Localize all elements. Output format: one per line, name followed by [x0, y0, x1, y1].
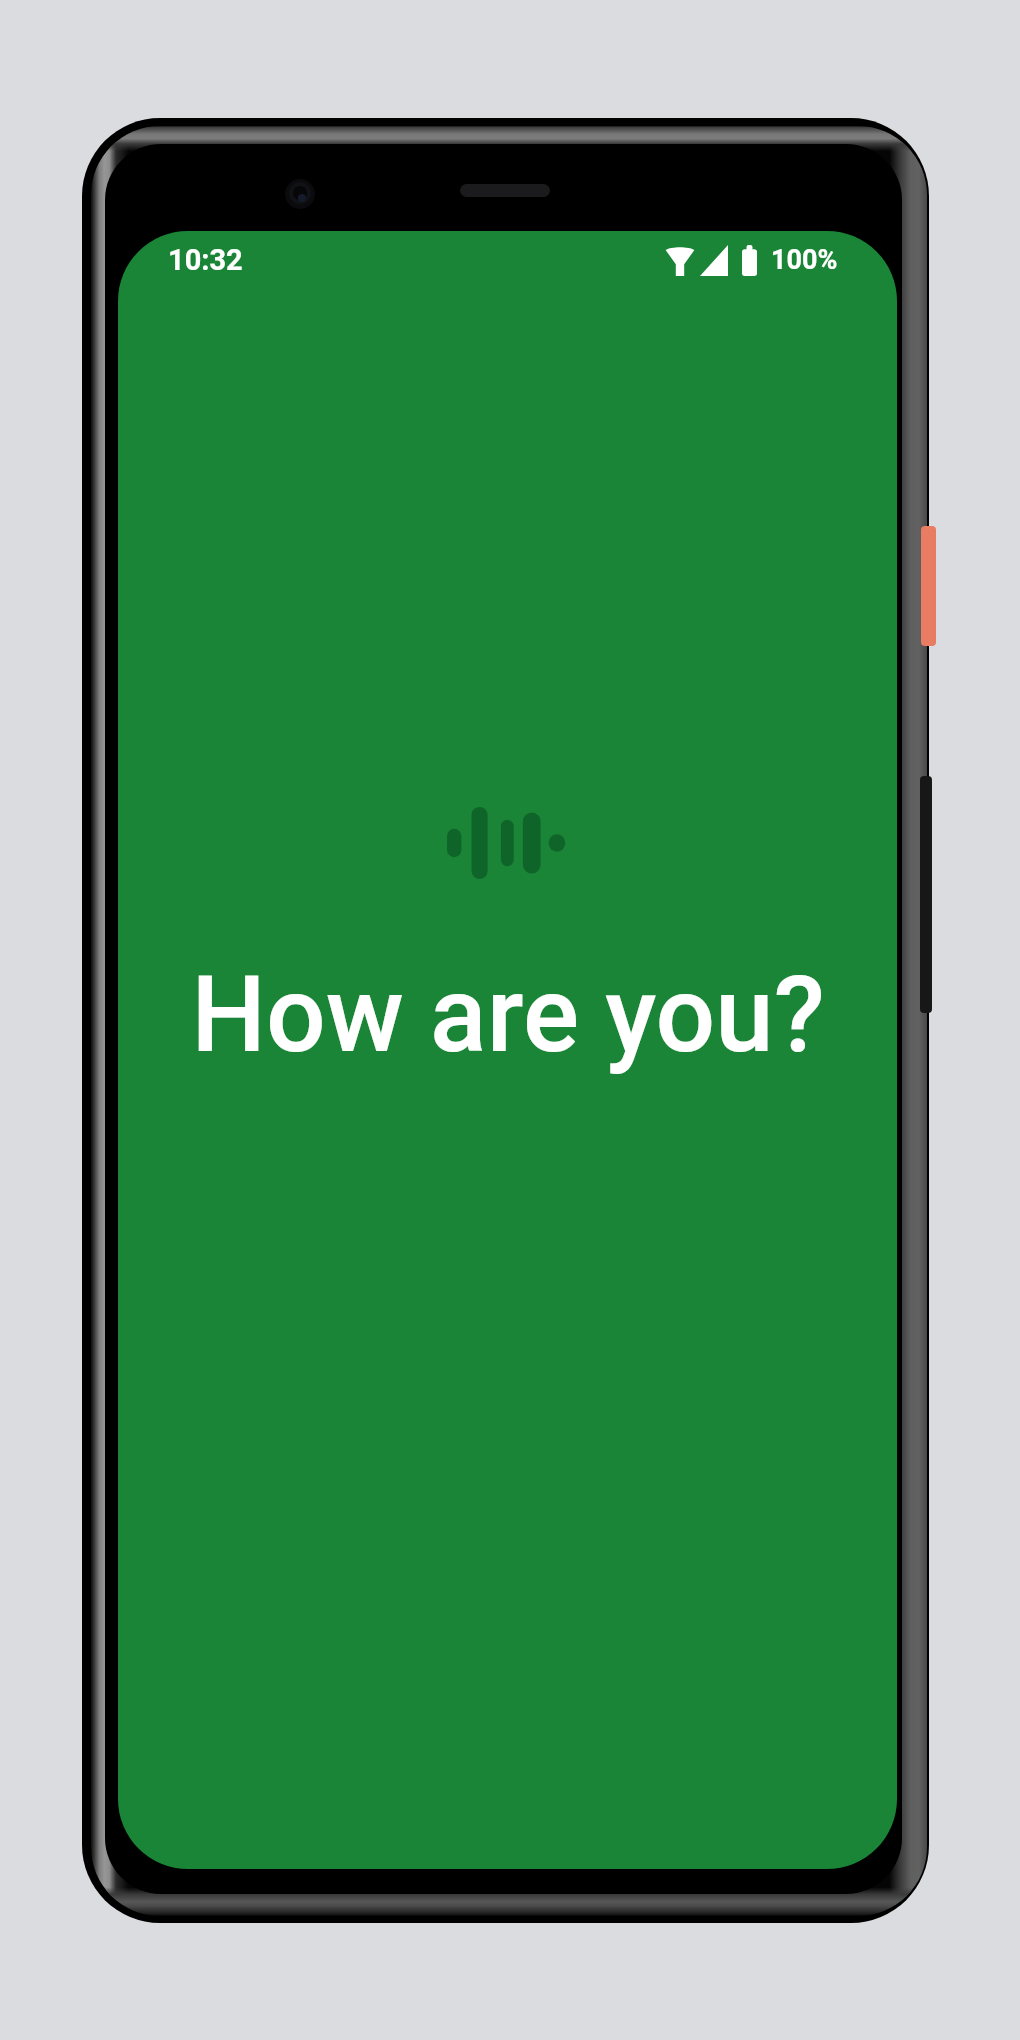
staticText: 100%: [771, 244, 838, 276]
button[interactable]: Voice input: [447, 805, 569, 881]
button[interactable]: Volume: [918, 772, 938, 1017]
staticText: 10:32: [168, 243, 243, 277]
button[interactable]: Power: [918, 522, 938, 650]
staticText: How are you?: [191, 954, 825, 1077]
